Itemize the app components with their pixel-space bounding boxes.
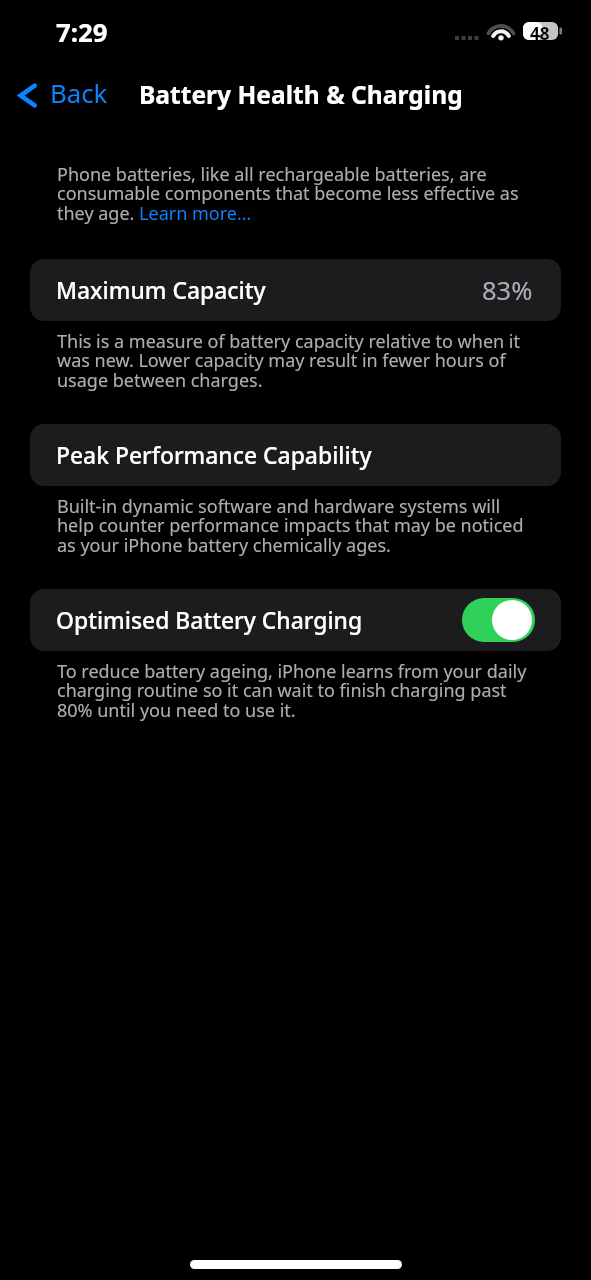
button[interactable]: Optimised Battery Charging — [30, 589, 561, 651]
staticText: To reduce battery ageing, iPhone learns … — [57, 659, 541, 723]
staticText: Battery Health & Charging — [139, 78, 463, 112]
other: Back — [15, 79, 39, 107]
button[interactable]: Peak Performance Capability — [30, 424, 561, 486]
staticText: Optimised Battery Charging — [56, 605, 363, 636]
button[interactable]: Optimised Battery Charging toggle — [462, 598, 535, 642]
staticText: 83% — [482, 273, 533, 308]
staticText: 48 — [530, 22, 550, 40]
staticText: Peak Performance Capability — [56, 440, 372, 471]
button[interactable]: Back — [15, 75, 108, 110]
staticText: 7:29 — [56, 14, 108, 49]
staticText: Built-in dynamic software and hardware s… — [57, 494, 541, 558]
staticText: This is a measure of battery capacity re… — [57, 329, 541, 393]
staticText: Phone batteries, like all rechargeable b… — [57, 162, 541, 226]
button[interactable]: Maximum Capacity — [30, 259, 561, 321]
staticText: Maximum Capacity — [56, 275, 266, 306]
staticText: Back — [50, 75, 108, 110]
